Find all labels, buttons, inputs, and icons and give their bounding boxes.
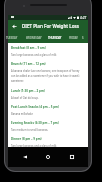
staticText: FRIDAY <box>69 36 78 40</box>
staticText: Post Lunch Snacks (4 pm – 5 pm) <box>11 105 60 109</box>
staticText: 4:27 <box>80 16 87 20</box>
staticText: DIET Plan For Weight Loss <box>22 23 79 29</box>
button[interactable]: Back <box>18 150 32 164</box>
staticText: Breakfast (8 am – 9 am) <box>11 46 46 50</box>
staticText: THURSDAY <box>48 36 62 40</box>
staticText: Evening Snacks (6:30 pm – 7 pm) <box>11 121 59 125</box>
staticText: Two large bananas and a glass of milk <box>11 144 57 147</box>
staticText: TUESDAY <box>6 36 18 40</box>
staticText: Dinner (8 pm – 9 pm) <box>11 137 42 141</box>
staticText: A banana shake (use one banana, one teas… <box>11 69 84 83</box>
staticText: Two large bananas and a glass of milk <box>11 53 57 56</box>
button[interactable]: WEDNESDAY <box>22 32 45 43</box>
button[interactable]: Back <box>8 20 20 32</box>
staticText: A bowl of Oat dal soup. <box>11 96 39 99</box>
button[interactable]: THURSDAY <box>45 32 65 43</box>
staticText: Lunch (1:30 pm – 2 pm) <box>11 89 45 93</box>
staticText: Two medium to small bananas. <box>11 128 49 131</box>
button[interactable]: Recent apps <box>65 150 79 164</box>
staticText: Brunch (11 am – 12 pm) <box>11 62 46 66</box>
staticText: WEDNESDAY <box>26 36 42 40</box>
button[interactable]: FRIDAY <box>65 32 82 43</box>
button[interactable]: TUESDAY <box>2 32 22 43</box>
staticText: Banana milkshake <box>11 112 33 115</box>
button[interactable]: Home <box>41 150 55 164</box>
